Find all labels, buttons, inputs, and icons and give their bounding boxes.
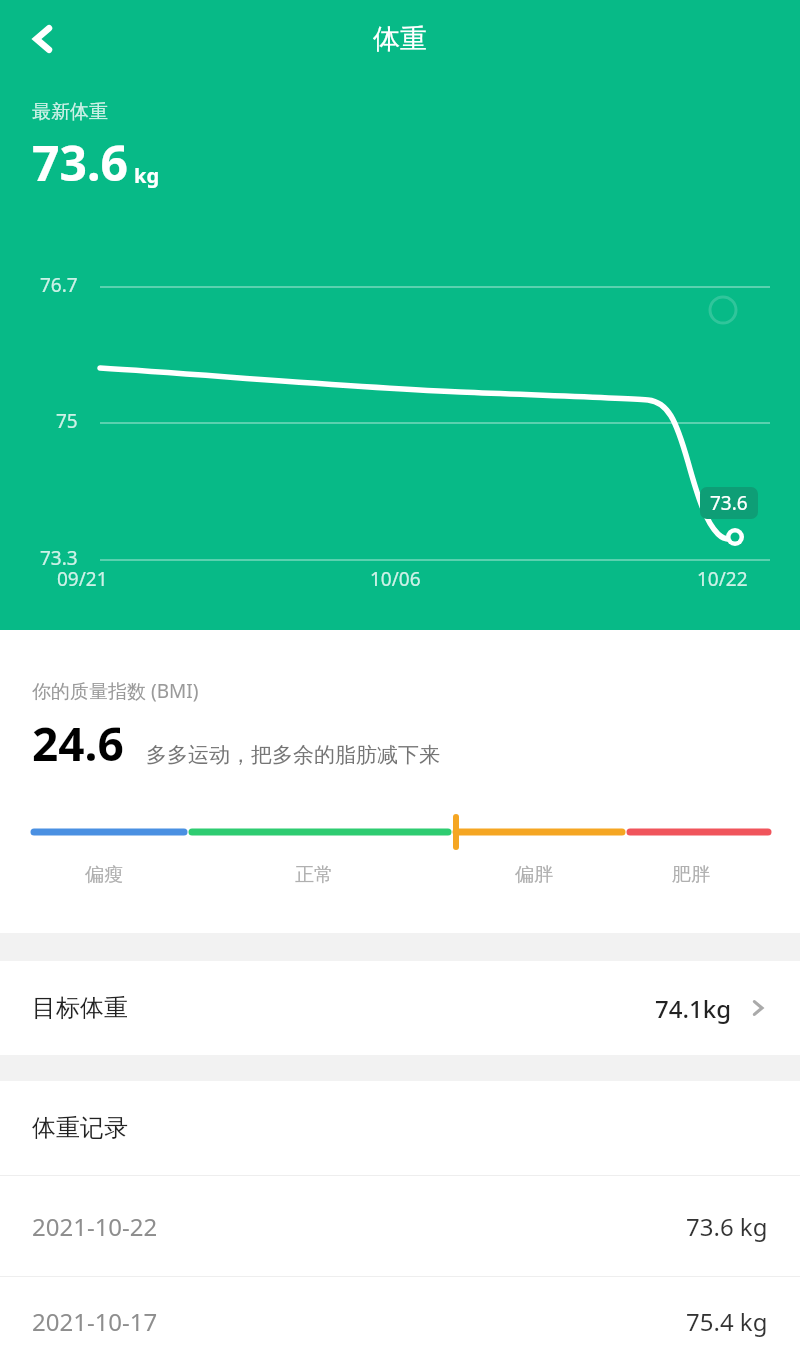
staticText: 偏胖 [515, 863, 553, 887]
button[interactable]: Back [10, 6, 76, 72]
staticText: 体重记录 [32, 1113, 128, 1143]
staticText: 75.4 kg [686, 1305, 768, 1338]
staticText: 74.1kg [655, 992, 732, 1025]
staticText: 76.7 [40, 272, 78, 298]
staticText: 24.6 [32, 712, 124, 775]
staticText: 偏瘦 [85, 863, 123, 887]
button[interactable]: 目标体重 [0, 961, 800, 1055]
button[interactable]: 2021-10-17 [0, 1277, 800, 1365]
staticText: 73.6 [32, 130, 128, 195]
staticText: 你的质量指数 (BMI) [32, 678, 199, 704]
staticText: 目标体重 [32, 993, 128, 1023]
staticText: kg [134, 162, 160, 189]
staticText: 肥胖 [672, 863, 710, 887]
staticText: 2021-10-17 [32, 1305, 158, 1338]
staticText: 2021-10-22 [32, 1210, 158, 1243]
staticText: 73.6 [710, 490, 748, 516]
staticText: 体重 [373, 22, 427, 56]
staticText: 多多运动，把多余的脂肪减下来 [146, 742, 440, 768]
staticText: 73.6 kg [686, 1210, 768, 1243]
staticText: 10/22 [697, 566, 748, 592]
staticText: 09/21 [57, 566, 108, 592]
staticText: 75 [56, 408, 78, 434]
button[interactable]: 2021-10-22 [0, 1176, 800, 1276]
staticText: 最新体重 [32, 100, 108, 124]
staticText: 73.3 [40, 545, 78, 571]
staticText: 正常 [295, 863, 333, 887]
staticText: 10/06 [370, 566, 421, 592]
